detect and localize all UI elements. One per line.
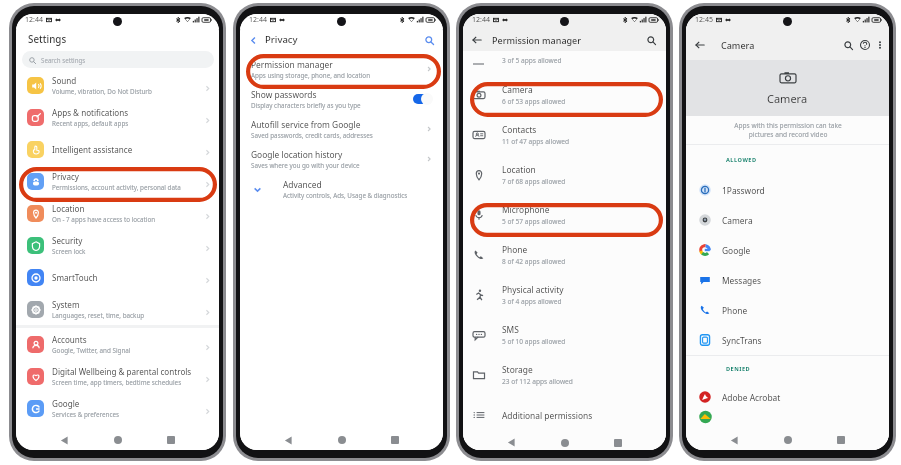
button[interactable]: Back xyxy=(723,430,745,450)
button[interactable]: Security xyxy=(16,229,219,261)
staticText: Adobe Acrobat xyxy=(722,392,781,403)
staticText: Permission manager xyxy=(251,59,333,70)
staticText: Messages xyxy=(722,275,761,286)
button[interactable]: SMS xyxy=(463,315,666,355)
button[interactable]: Sound xyxy=(16,69,219,101)
staticText: 7 of 68 apps allowed xyxy=(502,177,566,186)
button[interactable]: Search xyxy=(644,33,658,47)
staticText: Additional permissions xyxy=(502,410,593,421)
button[interactable]: Camera xyxy=(686,205,889,235)
button[interactable]: Phone xyxy=(463,235,666,275)
button[interactable]: Location xyxy=(463,155,666,195)
staticText: 12:44 xyxy=(249,15,267,25)
staticText: Permission manager xyxy=(492,34,582,46)
button[interactable] xyxy=(686,412,889,422)
staticText: Physical activity xyxy=(502,284,564,295)
button[interactable]: Back xyxy=(693,38,707,52)
button[interactable]: Accounts xyxy=(16,328,219,360)
button[interactable]: Recent apps xyxy=(607,435,629,450)
staticText: SyncTrans xyxy=(722,335,762,346)
button[interactable]: Microphone xyxy=(463,195,666,235)
staticText: On - 7 apps have access to location xyxy=(52,215,156,224)
button[interactable]: Search xyxy=(840,37,856,53)
staticText: Apps & notifications xyxy=(52,107,129,118)
button[interactable]: 3 of 5 apps allowed xyxy=(463,51,666,70)
button[interactable]: Recent apps xyxy=(160,430,182,450)
staticText: Google location history xyxy=(251,149,343,160)
button[interactable]: Search xyxy=(422,33,436,47)
button[interactable]: Physical activity xyxy=(463,275,666,315)
staticText: ALLOWED xyxy=(726,156,757,164)
staticText: Apps with this permission can take pictu… xyxy=(734,121,842,139)
staticText: Storage xyxy=(502,364,533,375)
button[interactable]: Permission manager xyxy=(240,54,443,84)
button[interactable]: Show passwords xyxy=(240,84,443,114)
button[interactable]: Show passwords toggle xyxy=(413,93,433,105)
staticText: Apps using storage, phone, and location xyxy=(251,71,371,80)
button[interactable]: Home xyxy=(554,435,576,450)
button[interactable]: Phone xyxy=(686,295,889,325)
staticText: 1Password xyxy=(722,185,765,196)
staticText: 6 of 53 apps allowed xyxy=(502,97,566,106)
button[interactable]: Recent apps xyxy=(830,430,852,450)
button[interactable]: Back xyxy=(500,435,522,450)
staticText: 23 of 112 apps allowed xyxy=(502,377,573,386)
button[interactable]: Intelligent assistance xyxy=(16,133,219,165)
staticText: 12:44 xyxy=(25,15,43,25)
button[interactable]: More options xyxy=(873,38,886,51)
button[interactable]: Additional permissions xyxy=(463,395,666,435)
button[interactable]: System xyxy=(16,293,219,325)
staticText: Show passwords xyxy=(251,89,317,100)
staticText: Languages, reset, time, backup xyxy=(52,311,145,320)
staticText: Autofill service from Google xyxy=(251,119,361,130)
button[interactable]: Back xyxy=(470,33,484,47)
button[interactable]: Help xyxy=(856,36,873,53)
button[interactable]: Storage xyxy=(463,355,666,395)
button[interactable]: Apps & notifications xyxy=(16,101,219,133)
staticText: Location xyxy=(52,203,85,214)
button[interactable]: Recent apps xyxy=(384,430,406,450)
button[interactable]: Search settings xyxy=(22,51,214,68)
staticText: Sound xyxy=(52,75,77,86)
staticText: Activity controls, Ads, Usage & diagnost… xyxy=(283,191,408,200)
button[interactable]: Back xyxy=(277,430,299,450)
button[interactable]: Location xyxy=(16,197,219,229)
button[interactable]: Adobe Acrobat xyxy=(686,382,889,412)
staticText: Google xyxy=(52,398,80,409)
staticText: 3 of 5 apps allowed xyxy=(502,56,562,65)
button[interactable]: Google xyxy=(686,235,889,265)
staticText: System xyxy=(52,299,80,310)
staticText: Volume, vibration, Do Not Disturb xyxy=(52,87,152,96)
staticText: Digital Wellbeing & parental controls xyxy=(52,366,192,377)
button[interactable]: Home xyxy=(777,430,799,450)
staticText: Display characters briefly as you type xyxy=(251,101,361,110)
button[interactable]: Contacts xyxy=(463,115,666,155)
button[interactable]: Google location history xyxy=(240,144,443,174)
staticText: Security xyxy=(52,235,83,246)
staticText: Recent apps, default apps xyxy=(52,119,129,128)
staticText: Camera xyxy=(722,215,753,226)
staticText: Google, Twitter, and Signal xyxy=(52,346,131,355)
button[interactable]: Back xyxy=(53,430,75,450)
button[interactable]: Camera xyxy=(463,75,666,115)
button[interactable]: Digital Wellbeing & parental controls xyxy=(16,360,219,392)
staticText: Google xyxy=(722,245,751,256)
button[interactable]: Home xyxy=(107,430,129,450)
button[interactable]: Back xyxy=(246,33,260,47)
staticText: Camera xyxy=(502,84,533,95)
button[interactable]: SmartTouch xyxy=(16,261,219,293)
staticText: SMS xyxy=(502,324,519,335)
staticText: Phone xyxy=(722,305,748,316)
button[interactable]: Home xyxy=(331,430,353,450)
button[interactable]: Privacy xyxy=(16,165,219,197)
button[interactable]: 1Password xyxy=(686,175,889,205)
staticText: Saved passwords, credit cards, addresses xyxy=(251,131,373,140)
staticText: 5 of 57 apps allowed xyxy=(502,217,566,226)
staticText: Screen time, app timers, bedtime schedul… xyxy=(52,378,182,387)
button[interactable]: Google xyxy=(16,392,219,424)
button[interactable]: Autofill service from Google xyxy=(240,114,443,144)
button[interactable]: Messages xyxy=(686,265,889,295)
button[interactable]: SyncTrans xyxy=(686,325,889,355)
staticText: 11 of 47 apps allowed xyxy=(502,137,570,146)
button[interactable]: Advanced xyxy=(240,174,443,204)
